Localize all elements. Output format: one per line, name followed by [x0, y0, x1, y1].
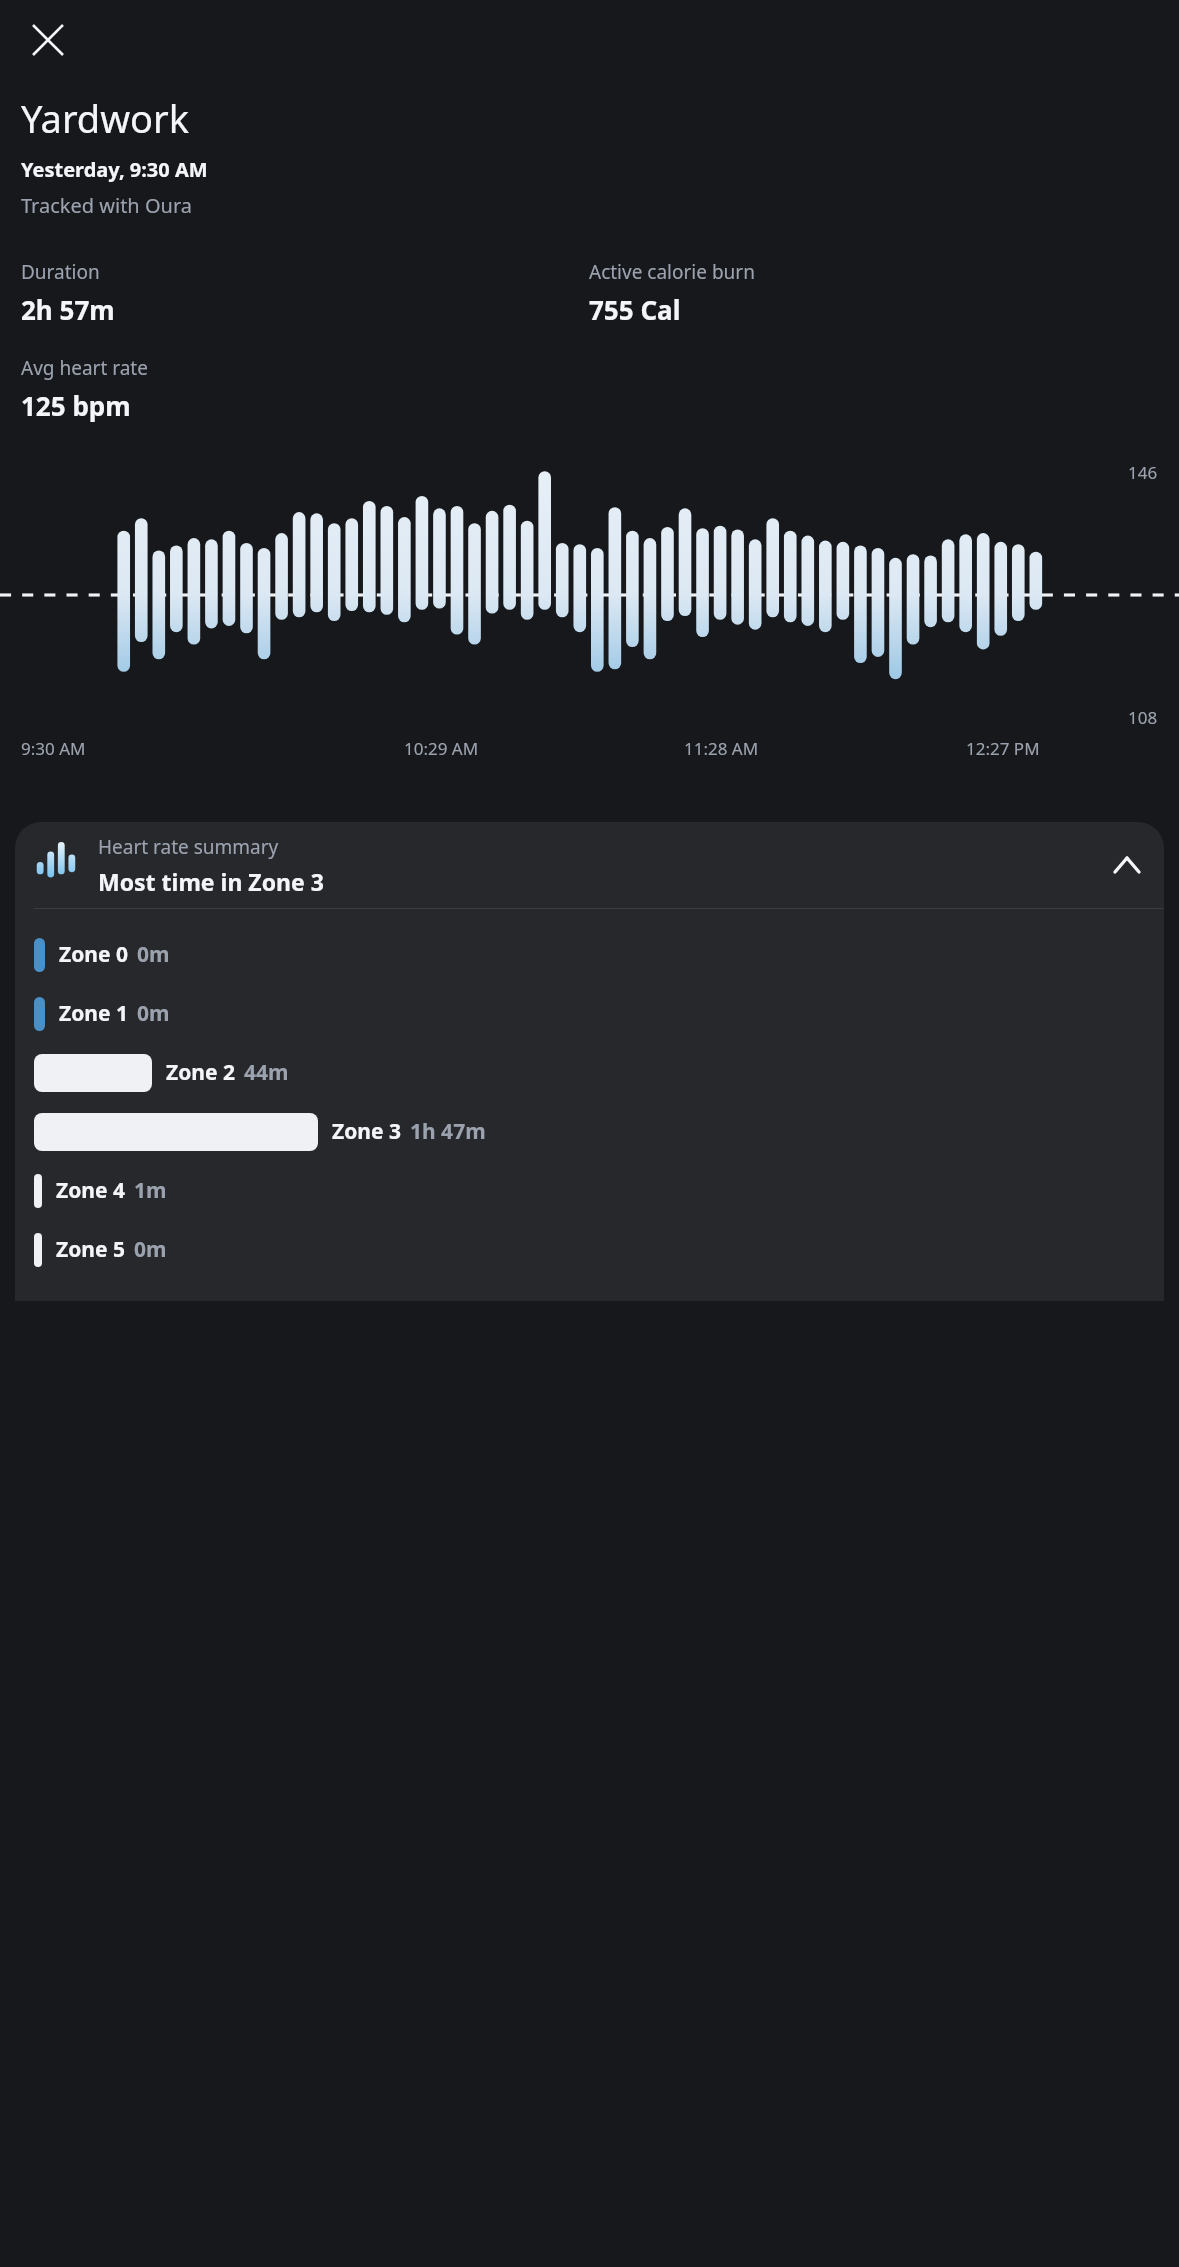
button[interactable]: Zone 2	[15, 1043, 1164, 1102]
button[interactable]: Heart rate summary	[15, 822, 1164, 908]
staticText: 0m	[137, 999, 170, 1028]
staticText: Most time in Zone 3	[98, 866, 324, 897]
staticText: Avg heart rate	[21, 355, 148, 381]
staticText: Zone 0	[59, 940, 128, 969]
staticText: 0m	[137, 940, 170, 969]
staticText: 1m	[134, 1176, 167, 1205]
staticText: 146	[1128, 461, 1158, 484]
staticText: 755 Cal	[589, 292, 681, 327]
button[interactable]: Zone 4	[15, 1161, 1164, 1220]
staticText: Zone 4	[56, 1176, 125, 1205]
staticText: 2h 57m	[21, 292, 115, 327]
staticText: Tracked with Oura	[21, 192, 192, 219]
staticText: Active calorie burn	[589, 259, 755, 285]
staticText: 108	[1128, 706, 1158, 729]
staticText: Heart rate summary	[98, 834, 279, 860]
staticText: 0m	[134, 1235, 167, 1264]
staticText: 9:30 AM	[21, 737, 86, 760]
staticText: Zone 5	[56, 1235, 125, 1264]
staticText: 12:27 PM	[966, 737, 1040, 760]
staticText: Zone 1	[59, 999, 128, 1028]
button[interactable]: Zone 0	[15, 925, 1164, 984]
button[interactable]: Close	[18, 10, 78, 70]
staticText: 44m	[244, 1058, 289, 1087]
staticText: Zone 2	[166, 1058, 235, 1087]
button[interactable]: Zone 5	[15, 1220, 1164, 1279]
staticText: 11:28 AM	[684, 737, 759, 760]
staticText: Duration	[21, 259, 100, 285]
staticText: Zone 3	[332, 1117, 401, 1146]
staticText: 1h 47m	[410, 1117, 486, 1146]
staticText: Yardwork	[21, 92, 190, 144]
staticText: 10:29 AM	[404, 737, 479, 760]
button[interactable]: Zone 1	[15, 984, 1164, 1043]
staticText: Yesterday, 9:30 AM	[21, 156, 208, 183]
staticText: 125 bpm	[21, 388, 131, 423]
button[interactable]: Zone 3	[15, 1102, 1164, 1161]
button[interactable]: Collapse	[1104, 842, 1150, 888]
